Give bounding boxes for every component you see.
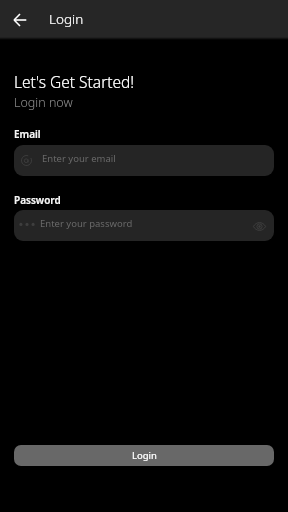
button[interactable]: Login <box>14 445 274 466</box>
button[interactable]: Show password <box>249 216 269 236</box>
staticText: Password <box>14 193 61 207</box>
button[interactable]: Enter your password <box>14 210 274 241</box>
staticText: Enter your password <box>40 217 133 230</box>
button[interactable]: Enter your email <box>14 145 274 176</box>
staticText: Email <box>14 127 41 141</box>
staticText: Login <box>49 10 84 28</box>
staticText: Login now <box>14 94 73 111</box>
button[interactable]: Back <box>4 3 36 35</box>
staticText: Login <box>132 449 157 462</box>
staticText: Enter your email <box>42 152 116 165</box>
staticText: Let's Get Started! <box>14 71 135 92</box>
